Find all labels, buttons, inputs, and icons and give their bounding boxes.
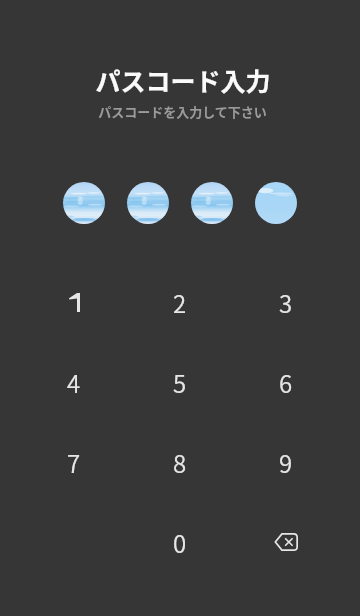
staticText: 7	[67, 445, 81, 480]
other: 1	[69, 293, 80, 312]
staticText: 5	[173, 365, 187, 400]
staticText: 6	[279, 365, 293, 400]
button[interactable]: 9	[233, 422, 339, 502]
staticText: パスコードを入力して下さい	[98, 102, 267, 121]
staticText: 9	[279, 445, 293, 480]
button[interactable]: 0	[127, 502, 233, 582]
other: Backspace	[274, 533, 298, 551]
button[interactable]: 7	[21, 422, 127, 502]
button[interactable]: Backspace	[233, 502, 339, 582]
button[interactable]: 1	[21, 262, 127, 342]
button[interactable]: 3	[233, 262, 339, 342]
staticText: パスコード入力	[95, 62, 271, 98]
staticText: 2	[173, 285, 187, 320]
button[interactable]: 5	[127, 342, 233, 422]
button[interactable]: 4	[21, 342, 127, 422]
button[interactable]: 2	[127, 262, 233, 342]
staticText: 8	[173, 445, 187, 480]
staticText: 0	[173, 525, 187, 560]
staticText: 4	[67, 365, 81, 400]
button[interactable]: 8	[127, 422, 233, 502]
button[interactable]: 6	[233, 342, 339, 422]
staticText: 3	[279, 285, 293, 320]
